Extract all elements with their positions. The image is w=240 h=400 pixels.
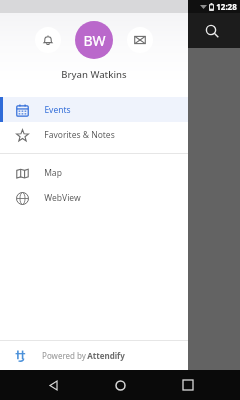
button[interactable]: Events: [0, 97, 188, 122]
button[interactable]: Powered by: [0, 341, 188, 370]
staticText: Map: [44, 167, 62, 179]
button[interactable]: Notifications: [35, 27, 61, 53]
staticText: Attendify: [87, 350, 125, 361]
staticText: WebView: [44, 192, 81, 204]
staticText: Bryan Watkins: [61, 68, 127, 81]
staticText: BW: [83, 31, 106, 50]
button[interactable]: Back: [38, 370, 68, 400]
button[interactable]: Map: [0, 160, 188, 185]
staticText: Favorites & Notes: [44, 129, 115, 141]
button[interactable]: Messages: [127, 27, 153, 53]
button[interactable]: BW: [75, 21, 113, 59]
staticText: Powered by: [41, 350, 87, 361]
button[interactable]: Search: [200, 19, 224, 43]
button[interactable]: Recent apps: [173, 370, 203, 400]
button[interactable]: WebView: [0, 185, 188, 210]
button[interactable]: Home: [105, 370, 135, 400]
staticText: Events: [44, 104, 71, 116]
button[interactable]: Favorites & Notes: [0, 122, 188, 147]
staticText: 12:28: [216, 1, 237, 12]
